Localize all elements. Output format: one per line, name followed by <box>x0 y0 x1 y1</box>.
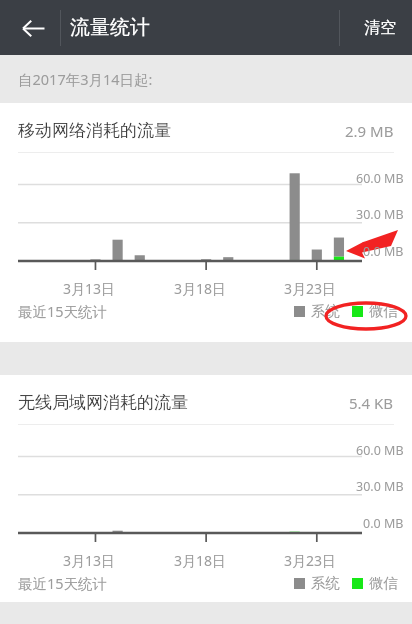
staticText: 30.0 MB <box>356 478 404 495</box>
button[interactable]: 无线局域网消耗的流量 <box>0 375 412 602</box>
staticText: 60.0 MB <box>356 170 404 187</box>
staticText: 0.0 MB <box>363 515 404 532</box>
staticText: 自2017年3月14日起: <box>18 69 153 89</box>
staticText: 流量统计 <box>70 15 150 40</box>
staticText: 3月23日 <box>284 551 337 570</box>
staticText: 60.0 MB <box>356 442 404 459</box>
staticText: 3月13日 <box>63 279 116 298</box>
staticText: 最近15天统计 <box>18 301 108 321</box>
staticText: 3月23日 <box>284 279 337 298</box>
button[interactable]: 移动网络消耗的流量 <box>0 103 412 342</box>
staticText: 3月13日 <box>63 551 116 570</box>
staticText: 最近15天统计 <box>18 573 108 593</box>
staticText: 3月18日 <box>174 551 227 570</box>
staticText: 3月18日 <box>174 279 227 298</box>
staticText: 0.0 MB <box>363 243 404 260</box>
staticText: 移动网络消耗的流量 <box>18 120 171 141</box>
staticText: 系统 <box>311 574 340 592</box>
staticText: 无线局域网消耗的流量 <box>18 392 188 413</box>
staticText: 系统 <box>311 302 340 320</box>
staticText: 微信 <box>369 302 398 320</box>
staticText: 5.4 KB <box>349 393 394 413</box>
button[interactable]: Back <box>6 1 60 55</box>
staticText: 30.0 MB <box>356 206 404 223</box>
staticText: 微信 <box>369 574 398 592</box>
button[interactable]: 清空 <box>348 0 412 55</box>
staticText: 清空 <box>364 18 396 38</box>
staticText: 2.9 MB <box>345 121 394 141</box>
